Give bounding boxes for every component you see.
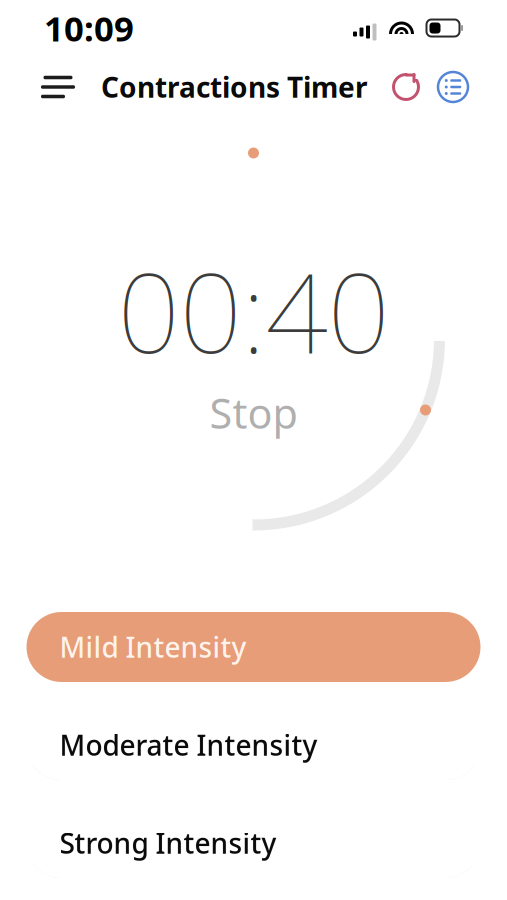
staticText: 10:09: [44, 5, 134, 51]
staticText: Moderate Intensity: [59, 726, 317, 764]
staticText: Strong Intensity: [59, 824, 276, 862]
button[interactable]: Strong Intensity: [26, 808, 480, 878]
staticText: Contractions Timer: [101, 68, 368, 106]
button[interactable]: Moderate Intensity: [26, 710, 480, 780]
button[interactable]: History list: [435, 69, 471, 105]
staticText: Stop: [209, 385, 297, 440]
button[interactable]: Mild Intensity: [26, 612, 480, 682]
button[interactable]: Menu: [36, 65, 80, 109]
staticText: 00:40: [117, 238, 389, 383]
staticText: Mild Intensity: [59, 628, 246, 666]
button[interactable]: Reset timer: [389, 70, 423, 104]
